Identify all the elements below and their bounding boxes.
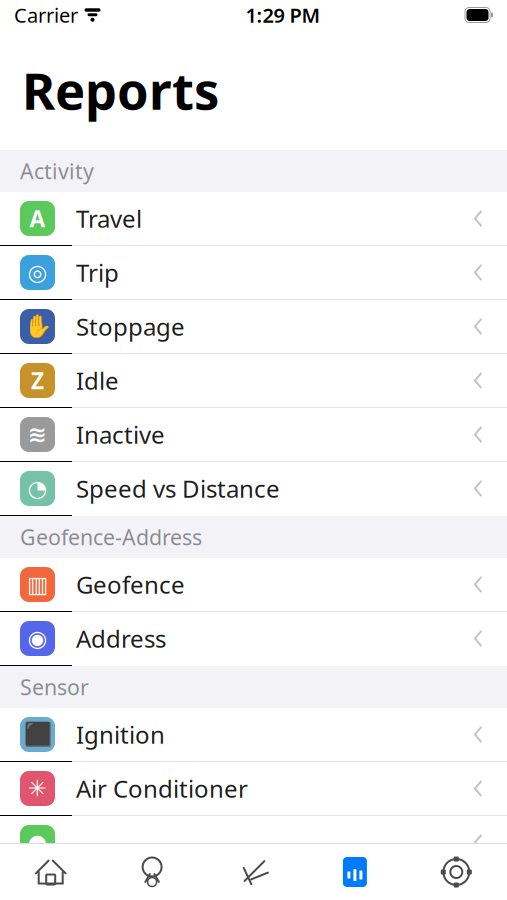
button[interactable]: ◉ [0, 612, 507, 666]
staticText: Air Conditioner [76, 773, 248, 804]
staticText: Inactive [76, 419, 165, 450]
staticText: ◔ [27, 476, 47, 501]
button[interactable]: Places [101, 844, 203, 900]
staticText: A [29, 203, 45, 233]
button[interactable]: ◎ [0, 246, 507, 300]
button[interactable]: Z [0, 354, 507, 408]
staticText: ◉ [27, 626, 47, 651]
staticText: Sensor [20, 673, 89, 701]
button[interactable]: ⬛ [0, 708, 507, 762]
button[interactable]: ◔ [0, 462, 507, 516]
staticText: Carrier [14, 2, 78, 28]
button[interactable]: ✳ [0, 762, 507, 816]
staticText: Trip [76, 257, 119, 288]
staticText: ● [27, 830, 47, 855]
button[interactable]: Navigate [203, 844, 304, 900]
staticText: 1:29 PM [245, 2, 320, 28]
staticText: Ignition [76, 719, 165, 750]
staticText: Travel [76, 203, 142, 234]
staticText: Geofence [76, 569, 185, 600]
staticText: ✳ [28, 776, 47, 801]
button[interactable]: Home [0, 844, 101, 900]
staticText: Idle [76, 365, 119, 396]
button[interactable]: ● [0, 816, 507, 870]
staticText: Address [76, 623, 166, 654]
staticText: ▥ [27, 572, 48, 597]
button[interactable]: Reports [304, 844, 406, 900]
staticText: ⬛ [23, 722, 51, 747]
button[interactable]: ▥ [0, 558, 507, 612]
staticText: ◎ [27, 260, 47, 285]
staticText: Stoppage [76, 311, 185, 342]
button[interactable]: A [0, 192, 507, 246]
staticText: Z [31, 365, 44, 395]
button[interactable]: ≋ [0, 408, 507, 462]
staticText: ≋ [28, 422, 47, 447]
staticText: Activity [20, 157, 94, 185]
staticText: ✋ [23, 314, 51, 339]
button[interactable]: Settings [406, 844, 507, 900]
staticText: Geofence-Address [20, 523, 202, 551]
button[interactable]: ✋ [0, 300, 507, 354]
staticText: Speed vs Distance [76, 473, 280, 504]
staticText: Reports [22, 56, 219, 124]
